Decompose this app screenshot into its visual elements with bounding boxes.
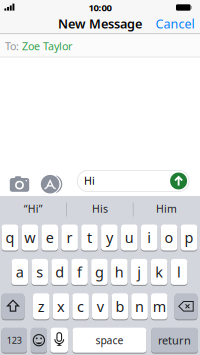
button[interactable]: a [12, 259, 28, 286]
button[interactable]: w [21, 224, 38, 251]
staticText: 10:00 [88, 1, 111, 14]
button[interactable]: Send [170, 172, 187, 189]
button[interactable]: f [71, 259, 88, 286]
button[interactable]: v [92, 293, 109, 320]
button[interactable]: Dictate [50, 328, 68, 354]
button[interactable]: n [131, 293, 148, 320]
staticText: Hi [84, 173, 95, 188]
staticText: h [115, 262, 124, 282]
button[interactable]: o [161, 224, 177, 251]
button[interactable]: Zoe Taylor [22, 39, 72, 53]
button[interactable]: z [33, 293, 50, 320]
button[interactable]: y [101, 224, 118, 251]
button[interactable]: return [151, 328, 198, 354]
button[interactable]: s [31, 259, 48, 286]
staticText: d [55, 262, 64, 282]
button[interactable]: b [112, 293, 128, 320]
button[interactable]: l [171, 259, 187, 286]
button[interactable]: Shift [2, 293, 24, 320]
staticText: space [95, 333, 123, 347]
staticText: m [153, 296, 166, 316]
button[interactable]: m [151, 293, 167, 320]
button[interactable]: k [151, 259, 167, 286]
button[interactable]: r [61, 224, 78, 251]
staticText: Zoe Taylor [22, 39, 72, 53]
button[interactable]: g [91, 259, 108, 286]
staticText: f [77, 262, 82, 282]
staticText: “Hi” [24, 201, 43, 216]
button[interactable]: e [41, 224, 58, 251]
staticText: a [16, 262, 24, 282]
staticText: k [155, 262, 163, 282]
staticText: o [165, 228, 174, 247]
staticText: p [184, 228, 193, 247]
staticText: r [67, 228, 73, 247]
button[interactable]: d [51, 259, 68, 286]
staticText: Cancel [155, 15, 194, 32]
staticText: u [125, 228, 134, 247]
button[interactable]: Camera [10, 175, 29, 194]
staticText: return [158, 333, 191, 348]
button[interactable]: c [72, 293, 89, 320]
staticText: s [36, 262, 43, 282]
staticText: g [95, 262, 104, 282]
staticText: b [115, 296, 124, 316]
button[interactable]: p [181, 224, 197, 251]
button[interactable]: Cancel [155, 15, 195, 33]
staticText: v [97, 296, 104, 316]
staticText: To: [5, 39, 19, 53]
button[interactable]: q [2, 224, 18, 251]
staticText: i [147, 228, 151, 247]
button[interactable]: Emoji [31, 328, 47, 354]
button[interactable]: j [131, 259, 147, 286]
button[interactable]: u [121, 224, 138, 251]
button[interactable]: His [67, 195, 133, 222]
staticText: Him [156, 201, 177, 216]
staticText: New Message [58, 15, 142, 32]
button[interactable]: “Hi” [0, 195, 66, 222]
button[interactable]: Him [134, 195, 200, 222]
button[interactable]: Apps [41, 175, 63, 194]
button[interactable]: t [81, 224, 98, 251]
button[interactable]: Delete [175, 293, 197, 320]
staticText: n [135, 296, 144, 316]
staticText: j [137, 262, 141, 282]
staticText: y [106, 228, 113, 247]
staticText: w [24, 228, 35, 247]
button[interactable]: h [111, 259, 128, 286]
button[interactable]: space [72, 328, 146, 354]
button[interactable]: Numbers [2, 328, 27, 354]
staticText: e [46, 228, 54, 247]
staticText: l [177, 262, 181, 282]
button[interactable]: x [53, 293, 69, 320]
staticText: q [5, 228, 14, 247]
staticText: c [77, 296, 84, 316]
staticText: x [57, 296, 65, 316]
staticText: t [87, 228, 92, 247]
button[interactable]: i [141, 224, 157, 251]
button[interactable]: Message [77, 170, 189, 192]
staticText: His [92, 201, 108, 216]
staticText: z [38, 296, 45, 316]
staticText: 123 [7, 334, 22, 346]
